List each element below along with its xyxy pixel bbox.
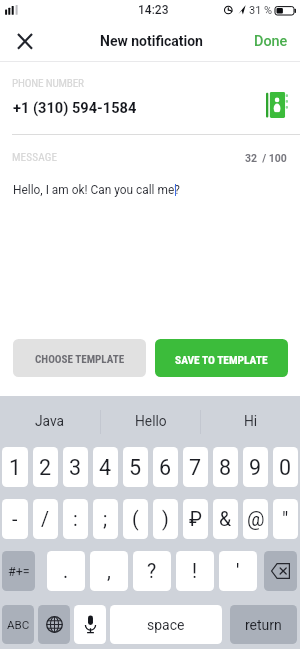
- button[interactable]: ": [273, 499, 298, 539]
- button[interactable]: @: [243, 499, 268, 539]
- button[interactable]: 8: [213, 447, 238, 487]
- staticText: 4: [99, 455, 112, 480]
- button[interactable]: space: [110, 605, 222, 644]
- staticText: Done: [254, 33, 288, 50]
- button[interactable]: ': [219, 551, 257, 591]
- staticText: -: [12, 508, 18, 531]
- button[interactable]: 3: [63, 447, 88, 487]
- staticText: ': [236, 560, 240, 583]
- staticText: 7: [189, 455, 202, 480]
- staticText: 2: [39, 455, 52, 480]
- staticText: 32 / 100: [245, 152, 287, 164]
- staticText: ABC: [7, 618, 30, 632]
- button[interactable]: 0: [273, 447, 298, 487]
- staticText: 3: [69, 455, 82, 480]
- staticText: (: [132, 508, 139, 531]
- button[interactable]: SAVE TO TEMPLATE: [155, 339, 288, 377]
- button[interactable]: ?: [133, 551, 171, 591]
- staticText: Hi: [244, 413, 258, 429]
- staticText: ): [162, 508, 169, 531]
- staticText: 31 %: [249, 4, 273, 17]
- staticText: ₽: [189, 508, 202, 531]
- staticText: MESSAGE: [12, 151, 58, 164]
- button[interactable]: ABC: [2, 605, 34, 644]
- staticText: 6: [159, 455, 172, 480]
- staticText: Hello: [135, 413, 167, 429]
- staticText: ": [282, 508, 289, 531]
- staticText: return: [245, 617, 282, 633]
- staticText: ;: [103, 508, 108, 531]
- button[interactable]: ₽: [183, 499, 208, 539]
- button[interactable]: -: [2, 499, 28, 539]
- button[interactable]: (: [123, 499, 148, 539]
- staticText: 14:23: [138, 3, 169, 17]
- button[interactable]: /: [33, 499, 58, 539]
- button[interactable]: Switch keyboard language: [38, 605, 70, 644]
- staticText: space: [147, 617, 185, 633]
- staticText: Java: [35, 413, 65, 429]
- button[interactable]: ;: [93, 499, 118, 539]
- staticText: New notification: [100, 33, 203, 49]
- staticText: +1 (310) 594-1584: [13, 99, 137, 116]
- button[interactable]: .: [47, 551, 85, 591]
- staticText: @: [247, 508, 265, 531]
- button[interactable]: ): [153, 499, 178, 539]
- button[interactable]: Hi: [201, 396, 300, 447]
- staticText: &: [219, 508, 232, 531]
- button[interactable]: &: [213, 499, 238, 539]
- staticText: .: [63, 560, 69, 583]
- staticText: ,: [107, 560, 111, 583]
- button[interactable]: 6: [153, 447, 178, 487]
- button[interactable]: 4: [93, 447, 118, 487]
- button[interactable]: :: [63, 499, 88, 539]
- button[interactable]: !: [176, 551, 214, 591]
- button[interactable]: ,: [90, 551, 128, 591]
- staticText: ?: [147, 560, 157, 583]
- staticText: SAVE TO TEMPLATE: [175, 353, 268, 366]
- button[interactable]: #+=: [2, 551, 35, 591]
- button[interactable]: Java: [0, 396, 100, 447]
- staticText: !: [192, 560, 198, 583]
- staticText: 1: [9, 455, 22, 480]
- button[interactable]: Backspace: [264, 551, 297, 591]
- staticText: /: [41, 508, 50, 531]
- button[interactable]: 2: [33, 447, 58, 487]
- button[interactable]: 1: [2, 447, 28, 487]
- staticText: #+=: [8, 564, 30, 579]
- button[interactable]: Done: [254, 20, 288, 61]
- staticText: 5: [129, 455, 142, 480]
- staticText: Hello, I am ok! Can you call me?: [13, 183, 180, 197]
- button[interactable]: Voice input: [74, 605, 106, 644]
- button[interactable]: 9: [243, 447, 268, 487]
- staticText: :: [73, 508, 78, 531]
- staticText: 0: [279, 455, 292, 480]
- button[interactable]: Hello: [101, 396, 200, 447]
- button[interactable]: 7: [183, 447, 208, 487]
- button[interactable]: return: [230, 605, 297, 644]
- staticText: 9: [249, 455, 262, 480]
- staticText: PHONE NUMBER: [12, 77, 84, 90]
- button[interactable]: 5: [123, 447, 148, 487]
- button[interactable]: Pick contact: [262, 88, 292, 122]
- staticText: CHOOSE TEMPLATE: [35, 353, 125, 366]
- button[interactable]: Close: [0, 20, 49, 61]
- staticText: 8: [219, 455, 232, 480]
- button[interactable]: CHOOSE TEMPLATE: [13, 339, 146, 377]
